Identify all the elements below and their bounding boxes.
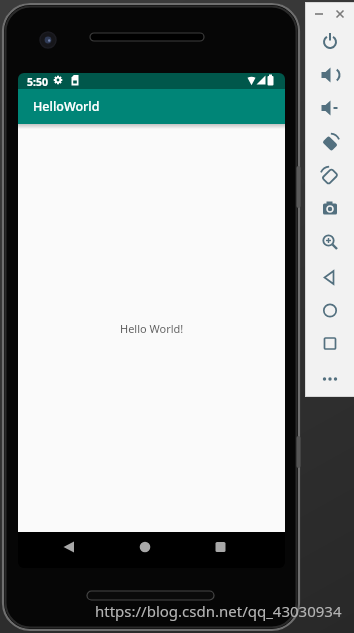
button[interactable] bbox=[316, 94, 344, 122]
button[interactable] bbox=[332, 6, 348, 22]
staticText: Hello World! bbox=[120, 321, 184, 336]
button[interactable]: HelloWorld bbox=[18, 89, 285, 124]
button[interactable] bbox=[316, 162, 344, 190]
button[interactable] bbox=[316, 297, 344, 325]
button[interactable] bbox=[316, 228, 344, 256]
button[interactable] bbox=[316, 61, 344, 89]
button[interactable] bbox=[316, 330, 344, 358]
button[interactable] bbox=[316, 264, 344, 292]
button[interactable] bbox=[132, 535, 157, 560]
button[interactable] bbox=[316, 194, 344, 222]
button[interactable] bbox=[56, 535, 81, 560]
button[interactable] bbox=[208, 535, 233, 560]
button[interactable] bbox=[316, 129, 344, 157]
staticText: HelloWorld bbox=[33, 98, 100, 115]
staticText: 5:50 bbox=[27, 75, 48, 89]
button[interactable] bbox=[316, 27, 344, 55]
button[interactable] bbox=[316, 365, 344, 393]
button[interactable] bbox=[311, 8, 327, 24]
staticText: https://blog.csdn.net/qq_43030934 bbox=[95, 601, 342, 621]
